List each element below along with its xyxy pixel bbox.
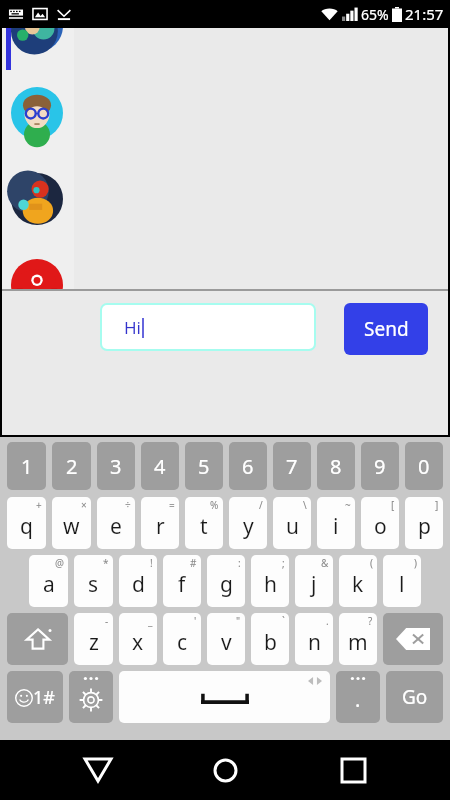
button[interactable]: Space: [119, 671, 330, 723]
staticText: u: [286, 512, 299, 541]
staticText: o: [374, 512, 387, 541]
button[interactable]: Contact avatar: [11, 138, 63, 190]
staticText: ;: [282, 556, 285, 570]
staticText: n: [308, 628, 321, 657]
button[interactable]: 5: [185, 442, 223, 490]
staticText: 2: [66, 453, 78, 480]
staticText: ': [194, 614, 197, 628]
staticText: 6: [242, 453, 254, 480]
staticText: r: [156, 512, 165, 541]
staticText: 0: [418, 453, 430, 480]
button[interactable]: 6: [229, 442, 267, 490]
button[interactable]: +: [7, 497, 46, 549]
button[interactable]: *: [74, 555, 113, 607]
staticText: q: [20, 512, 33, 541]
staticText: j: [311, 570, 317, 599]
staticText: -: [105, 614, 109, 628]
button[interactable]: Home: [195, 740, 255, 800]
button[interactable]: 1: [7, 442, 46, 490]
button[interactable]: [: [361, 497, 399, 549]
button[interactable]: :: [207, 555, 245, 607]
button[interactable]: .: [336, 671, 380, 723]
button[interactable]: Symbols and emoji: [7, 671, 63, 723]
button[interactable]: ]: [405, 497, 443, 549]
staticText: g: [220, 570, 233, 599]
staticText: d: [132, 570, 145, 599]
button[interactable]: ~: [317, 497, 355, 549]
staticText: 4: [154, 453, 166, 480]
staticText: t: [200, 512, 208, 541]
staticText: 1: [21, 453, 33, 480]
button[interactable]: 4: [141, 442, 179, 490]
staticText: \: [303, 498, 307, 512]
button[interactable]: ": [207, 613, 245, 665]
staticText: a: [43, 570, 55, 599]
button[interactable]: 3: [97, 442, 135, 490]
staticText: 3: [110, 453, 122, 480]
button[interactable]: -: [74, 613, 113, 665]
staticText: x: [132, 628, 144, 657]
button[interactable]: Back: [68, 740, 128, 800]
staticText: h: [264, 570, 277, 599]
button[interactable]: \: [273, 497, 311, 549]
button[interactable]: ;: [251, 555, 289, 607]
button[interactable]: Contact avatar: [11, 52, 63, 104]
staticText: s: [88, 570, 99, 599]
button[interactable]: Go: [386, 671, 443, 723]
staticText: 9: [374, 453, 386, 480]
staticText: :: [238, 556, 241, 570]
staticText: ~: [345, 498, 351, 512]
button[interactable]: 7: [273, 442, 311, 490]
button[interactable]: Recent apps: [323, 740, 383, 800]
staticText: m: [348, 628, 368, 657]
staticText: y: [243, 512, 254, 541]
staticText: e: [110, 512, 122, 541]
staticText: 1#: [33, 685, 55, 710]
button[interactable]: Backspace: [383, 613, 443, 665]
button[interactable]: ?: [339, 613, 377, 665]
staticText: ": [236, 614, 241, 628]
button[interactable]: Shift: [7, 613, 68, 665]
button[interactable]: Send: [344, 303, 428, 355]
staticText: b: [264, 628, 277, 657]
staticText: ]: [435, 498, 439, 512]
button[interactable]: Contact avatar: [11, 224, 63, 276]
staticText: i: [333, 512, 339, 541]
button[interactable]: 2: [52, 442, 91, 490]
staticText: /: [259, 498, 263, 512]
staticText: @: [55, 556, 64, 570]
staticText: _: [148, 614, 153, 628]
staticText: &: [321, 556, 329, 570]
button[interactable]: !: [119, 555, 157, 607]
button[interactable]: _: [119, 613, 157, 665]
staticText: `: [282, 614, 285, 628]
staticText: .: [326, 614, 329, 628]
staticText: ×: [81, 498, 87, 512]
button[interactable]: ': [163, 613, 201, 665]
button[interactable]: %: [185, 497, 223, 549]
button[interactable]: @: [29, 555, 68, 607]
button[interactable]: ×: [52, 497, 91, 549]
staticText: %: [210, 498, 219, 512]
staticText: +: [36, 498, 42, 512]
staticText: z: [89, 628, 99, 657]
button[interactable]: 9: [361, 442, 399, 490]
button[interactable]: (: [339, 555, 377, 607]
staticText: =: [169, 498, 175, 512]
button[interactable]: 0: [405, 442, 443, 490]
button[interactable]: Hi: [100, 303, 316, 351]
button[interactable]: ): [383, 555, 421, 607]
button[interactable]: Settings: [69, 671, 113, 723]
button[interactable]: #: [163, 555, 201, 607]
button[interactable]: .: [295, 613, 333, 665]
staticText: Hi: [124, 316, 141, 339]
button[interactable]: &: [295, 555, 333, 607]
staticText: c: [177, 628, 188, 657]
button[interactable]: 8: [317, 442, 355, 490]
button[interactable]: =: [141, 497, 179, 549]
staticText: ?: [368, 614, 373, 628]
button[interactable]: /: [229, 497, 267, 549]
button[interactable]: `: [251, 613, 289, 665]
staticText: 7: [286, 453, 298, 480]
button[interactable]: ÷: [97, 497, 135, 549]
